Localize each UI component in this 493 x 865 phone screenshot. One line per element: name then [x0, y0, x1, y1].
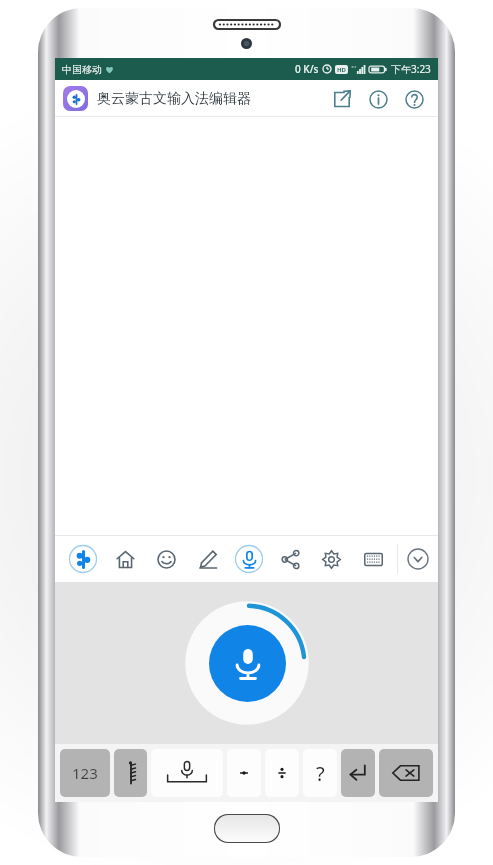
button[interactable]: Home	[108, 542, 142, 576]
button[interactable]: Home	[214, 814, 280, 843]
staticText: 奥云蒙古文输入法编辑器	[97, 90, 251, 108]
staticText: 下午3:23	[391, 62, 431, 76]
button[interactable]: Share	[273, 542, 307, 576]
staticText: 0 K/s	[295, 62, 319, 76]
staticText: ?	[316, 760, 325, 787]
button[interactable]: Recording microphone	[184, 600, 310, 726]
button[interactable]: Dot	[227, 749, 261, 797]
button[interactable]: Colon	[265, 749, 299, 797]
button[interactable]: Space voice	[151, 749, 223, 797]
button[interactable]: Keyboard	[356, 542, 390, 576]
button[interactable]: Handwriting	[190, 542, 224, 576]
button[interactable]: 123	[60, 749, 110, 797]
button[interactable]: Backspace	[379, 749, 433, 797]
staticText: 123	[72, 763, 98, 783]
button[interactable]: Mongolian IME	[66, 542, 100, 576]
button[interactable]: Emoji	[149, 542, 183, 576]
button[interactable]: Mongolian	[114, 749, 147, 797]
button[interactable]: Info	[363, 84, 393, 114]
button[interactable]: Voice input	[232, 542, 266, 576]
button[interactable]: Share	[327, 84, 357, 114]
button[interactable]: Collapse	[398, 535, 438, 582]
button[interactable]: Question mark	[303, 749, 337, 797]
button[interactable]: Help	[399, 84, 429, 114]
staticText: 中国移动	[62, 63, 102, 76]
button[interactable]: Enter	[341, 749, 375, 797]
staticText: HD	[337, 66, 346, 74]
button[interactable]: Settings	[314, 542, 348, 576]
